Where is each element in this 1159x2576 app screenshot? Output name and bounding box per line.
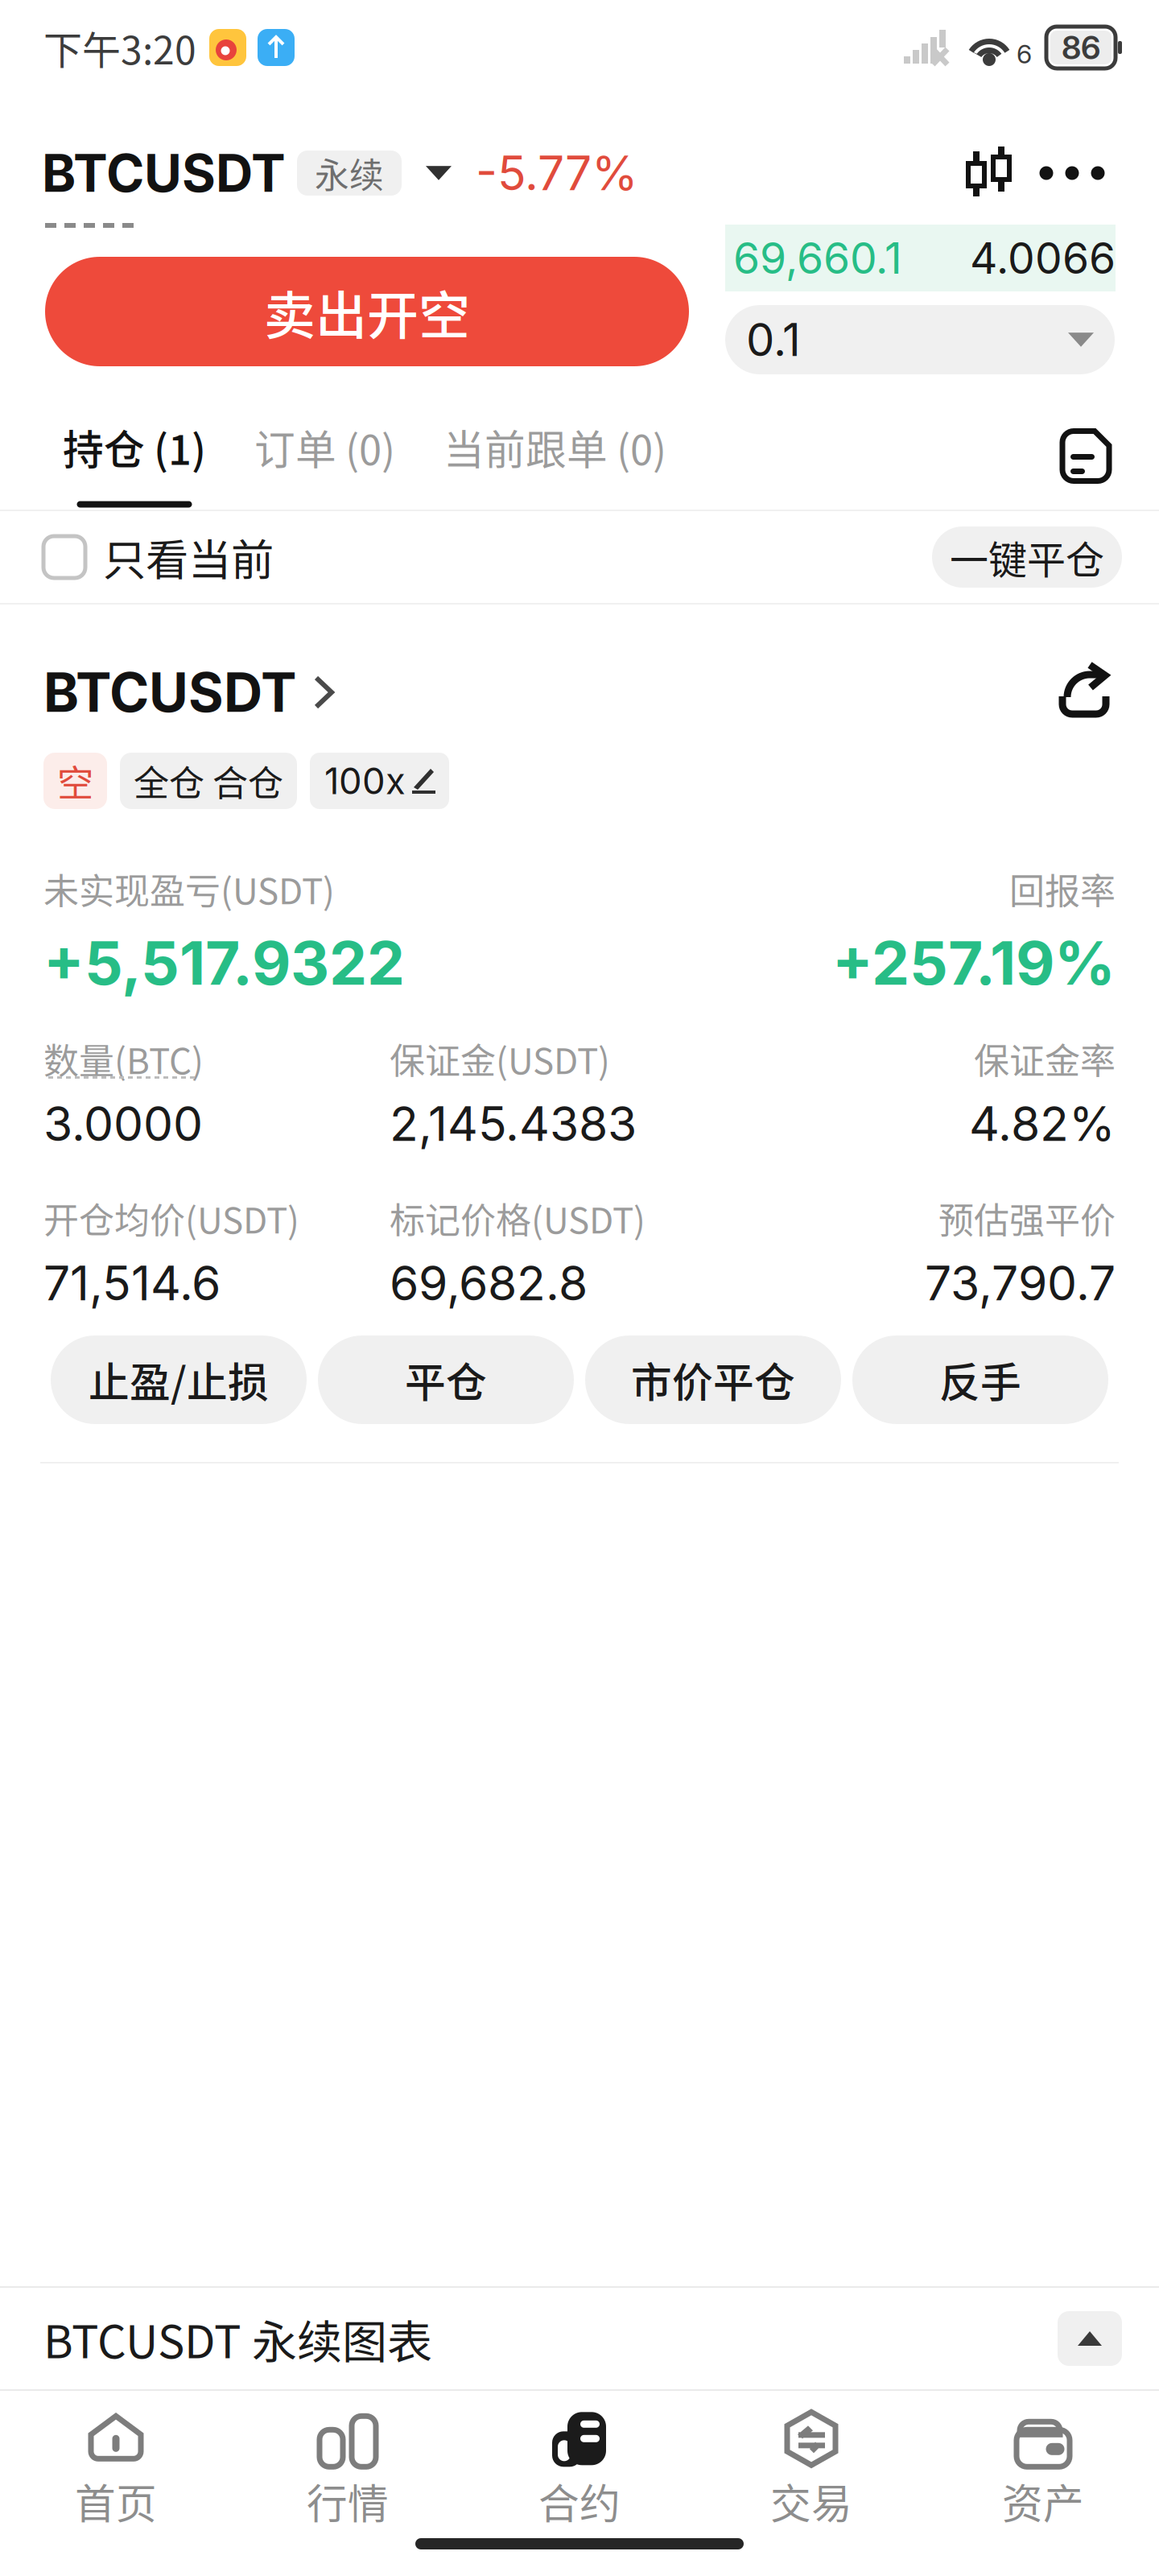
staticText: 订单 (0) (254, 418, 395, 477)
staticText: +5,517.9322 (43, 926, 405, 999)
staticText: 预估强平价 (938, 1192, 1116, 1244)
button[interactable]: 0.1 (725, 305, 1115, 374)
staticText: -5.77% (476, 144, 638, 202)
staticText: 下午3:20 (43, 19, 196, 75)
button[interactable]: 持仓 (1) (63, 422, 206, 508)
button[interactable]: 首页 (0, 2402, 232, 2539)
button[interactable]: 行情 (232, 2402, 464, 2539)
staticText: 保证金(USDT) (390, 1033, 610, 1084)
staticText: 数量(BTC) (43, 1033, 204, 1084)
button[interactable]: BTCUSDT 永续图表 (0, 2288, 1159, 2389)
staticText: 3.0000 (43, 1095, 203, 1152)
staticText: 86 (1062, 28, 1100, 67)
button[interactable]: 止盈/止损 (51, 1335, 307, 1424)
staticText: 交易 (770, 2472, 852, 2531)
staticText: 100x (324, 759, 406, 803)
button[interactable]: 平仓 (318, 1335, 574, 1424)
staticText: 反手 (939, 1350, 1021, 1409)
staticText: +257.19% (832, 926, 1116, 999)
button[interactable]: 合约 (464, 2402, 695, 2539)
staticText: 平仓 (405, 1350, 487, 1409)
staticText: 0.1 (746, 312, 801, 367)
staticText: 4.0066 (970, 232, 1116, 284)
button[interactable]: More (1021, 145, 1124, 201)
staticText: 4.82% (969, 1095, 1116, 1152)
staticText: 当前跟单 (0) (443, 418, 666, 477)
staticText: BTCUSDT 永续图表 (43, 2306, 432, 2371)
staticText: 市价平仓 (631, 1350, 795, 1409)
button[interactable]: Share (1053, 658, 1116, 726)
staticText: 6 (1017, 38, 1032, 69)
button[interactable]: 当前跟单 (0) (443, 422, 666, 472)
staticText: 全仓 合仓 (134, 755, 283, 806)
button[interactable]: 只看当前 (43, 512, 274, 602)
staticText: 持仓 (1) (63, 418, 206, 477)
button[interactable]: 一键平仓 (932, 526, 1122, 588)
staticText: 回报率 (1009, 863, 1116, 914)
button[interactable]: 交易 (695, 2402, 927, 2539)
staticText: 首页 (75, 2472, 157, 2531)
staticText: 69,682.8 (390, 1255, 588, 1312)
button[interactable]: 反手 (852, 1335, 1108, 1424)
staticText: 行情 (307, 2472, 389, 2531)
staticText: 未实现盈亏(USDT) (43, 863, 335, 914)
staticText: 资产 (1002, 2472, 1084, 2531)
staticText: 只看当前 (103, 526, 274, 588)
staticText: 止盈/止损 (89, 1350, 269, 1409)
button[interactable]: Chart (958, 142, 1021, 204)
staticText: 开仓均价(USDT) (43, 1192, 299, 1244)
staticText: 73,790.7 (925, 1255, 1116, 1312)
staticText: 保证金率 (974, 1033, 1116, 1084)
staticText: 2,145.4383 (390, 1095, 637, 1152)
staticText: BTCUSDT (43, 660, 296, 725)
button[interactable]: BTCUSDT (43, 654, 335, 730)
button[interactable]: Order history (1056, 422, 1119, 491)
staticText: 空 (57, 754, 93, 807)
staticText: 71,514.6 (43, 1255, 221, 1312)
staticText: 卖出开空 (264, 274, 470, 349)
staticText: BTCUSDT (42, 142, 286, 204)
button[interactable]: 卖出开空 (45, 257, 689, 366)
staticText: 永续 (315, 148, 384, 198)
staticText: 69,660.1 (733, 232, 902, 284)
staticText: 标记价格(USDT) (390, 1192, 645, 1244)
staticText: 合约 (538, 2472, 621, 2531)
staticText: 一键平仓 (950, 529, 1104, 585)
button[interactable]: 市价平仓 (585, 1335, 841, 1424)
button[interactable]: 订单 (0) (254, 422, 395, 472)
button[interactable]: 资产 (927, 2402, 1159, 2539)
